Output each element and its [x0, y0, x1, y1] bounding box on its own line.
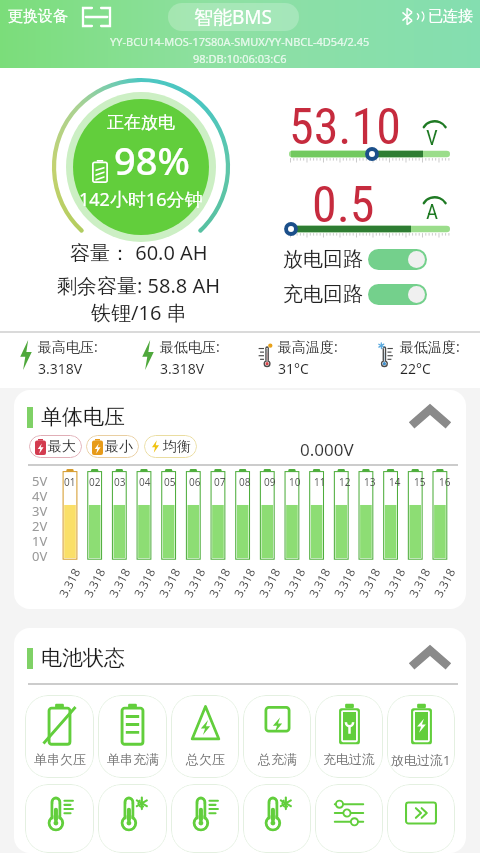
staticText: 3.318	[155, 565, 184, 600]
button[interactable]: More	[387, 784, 455, 853]
staticText: 3.318	[205, 565, 234, 600]
staticText: 充电回路	[283, 282, 363, 307]
staticText: 最小	[105, 438, 133, 456]
staticText: 单串充满	[107, 751, 159, 767]
staticText: 3.318	[330, 565, 359, 600]
staticText: 10	[289, 475, 301, 489]
staticText: 3.318	[355, 565, 384, 600]
staticText: 3V	[32, 502, 48, 517]
staticText: A	[426, 200, 439, 225]
staticText: 3.318V	[160, 359, 205, 378]
staticText: 1V	[32, 532, 48, 547]
staticText: 09	[264, 475, 276, 489]
staticText: 4V	[32, 487, 48, 502]
button[interactable]: 更换设备	[8, 3, 110, 30]
staticText: 单串欠压	[34, 751, 86, 767]
staticText: 01	[64, 475, 76, 489]
button[interactable]: Collapse	[410, 647, 450, 669]
button[interactable]: Collapse	[410, 406, 450, 428]
button[interactable]: 充电回路	[283, 282, 427, 307]
staticText: 最低电压:	[160, 337, 220, 356]
staticText: 最高温度:	[278, 337, 338, 356]
staticText: 0.5	[312, 176, 375, 235]
button[interactable]: 智能BMS	[168, 3, 299, 31]
staticText: 3.318	[405, 565, 434, 600]
staticText: 142小时16分钟	[79, 187, 203, 212]
staticText: 放电回路	[283, 247, 363, 272]
staticText: 最低温度:	[400, 337, 460, 356]
staticText: 53.10	[289, 98, 401, 157]
staticText: 08	[239, 475, 251, 489]
staticText: 14	[389, 475, 401, 489]
staticText: 3.318	[230, 565, 259, 600]
button[interactable]: 均衡	[144, 435, 197, 458]
staticText: 容量： 60.0 AH	[70, 239, 208, 266]
staticText: V	[426, 126, 438, 151]
staticText: 正在放电	[107, 112, 175, 133]
staticText: 3.318	[180, 565, 209, 600]
button[interactable]: 已连接	[402, 3, 473, 30]
staticText: 03	[114, 475, 126, 489]
button[interactable]: 放电回路	[283, 247, 427, 272]
staticText: 最高电压:	[38, 337, 98, 356]
button[interactable]: 总欠压	[171, 695, 239, 778]
button[interactable]: 最大	[29, 435, 82, 458]
button[interactable]: 最小	[86, 435, 139, 458]
staticText: 02	[89, 475, 101, 489]
staticText: 22°C	[400, 359, 431, 378]
staticText: 11	[314, 475, 326, 489]
staticText: 3.318	[430, 565, 459, 600]
button[interactable]: High temperature charge	[25, 784, 94, 853]
staticText: 均衡	[163, 438, 191, 456]
staticText: 已连接	[428, 7, 473, 26]
staticText: 铁锂/16 串	[91, 299, 187, 326]
staticText: 智能BMS	[194, 4, 273, 30]
staticText: 3.318	[80, 565, 109, 600]
staticText: 98%	[114, 134, 190, 186]
staticText: 3.318V	[38, 359, 83, 378]
button[interactable]: 单串充满	[98, 695, 167, 778]
staticText: 3.318	[255, 565, 284, 600]
staticText: YY-BCU14-MOS-17S80A-SMUX/YY-NBCL-4D54/2.…	[110, 34, 370, 49]
button[interactable]: 总充满	[243, 695, 311, 778]
staticText: 3.318	[105, 565, 134, 600]
staticText: 放电过流1	[391, 751, 451, 769]
button[interactable]: 充电过流	[315, 695, 383, 778]
staticText: 3.318	[130, 565, 159, 600]
staticText: 单体电压	[41, 404, 125, 430]
staticText: 3.318	[55, 565, 84, 600]
staticText: 0V	[32, 547, 48, 562]
staticText: 06	[189, 475, 201, 489]
button[interactable]: 放电过流1	[387, 695, 455, 778]
staticText: 05	[164, 475, 176, 489]
staticText: 2V	[32, 517, 48, 532]
staticText: 31°C	[278, 359, 309, 378]
button[interactable]: Low temperature discharge	[243, 784, 311, 853]
button[interactable]: Low temperature charge	[98, 784, 167, 853]
staticText: 总欠压	[186, 751, 225, 767]
staticText: 最大	[48, 438, 76, 456]
staticText: 13	[364, 475, 376, 489]
button[interactable]: Settings	[315, 784, 383, 853]
staticText: 3.318	[280, 565, 309, 600]
staticText: 98:DB:10:06:03:C6	[193, 51, 287, 66]
staticText: 更换设备	[8, 7, 68, 26]
staticText: 剩余容量: 58.8 AH	[57, 272, 221, 299]
staticText: 07	[214, 475, 226, 489]
staticText: 3.318	[305, 565, 334, 600]
staticText: 总充满	[258, 751, 297, 767]
staticText: 16	[439, 475, 451, 489]
staticText: 15	[414, 475, 426, 489]
staticText: 3.318	[380, 565, 409, 600]
staticText: 电池状态	[41, 645, 125, 671]
staticText: 04	[139, 475, 151, 489]
staticText: 0.000V	[300, 438, 354, 461]
staticText: 5V	[32, 472, 48, 487]
staticText: 12	[339, 475, 351, 489]
button[interactable]: 单串欠压	[25, 695, 94, 778]
staticText: 充电过流	[323, 751, 375, 767]
button[interactable]: High temperature discharge	[171, 784, 239, 853]
